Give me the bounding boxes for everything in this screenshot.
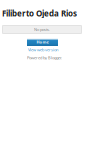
staticText: Filiberto Ojeda Rios	[2, 8, 77, 19]
staticText: View web version	[28, 47, 58, 52]
button[interactable]: Home	[27, 38, 58, 46]
staticText: No posts.	[34, 27, 50, 32]
staticText: Powered by Blogger.	[27, 55, 62, 60]
button[interactable]: View web version	[28, 47, 58, 52]
staticText: Home	[36, 39, 48, 45]
